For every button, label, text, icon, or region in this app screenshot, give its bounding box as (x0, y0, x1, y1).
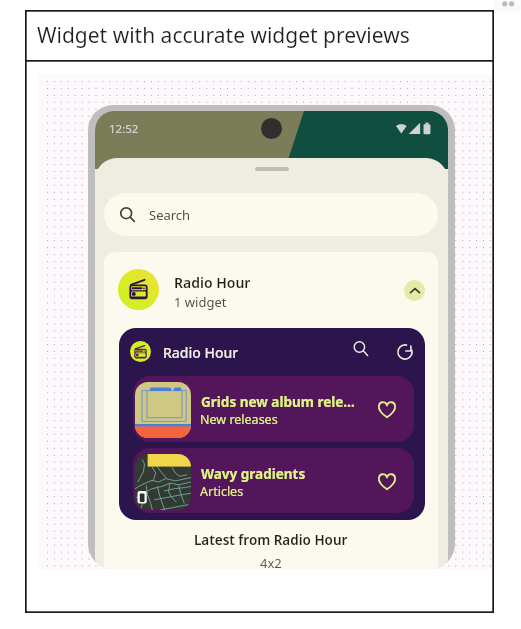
staticText: Grids new album releas… (201, 393, 357, 411)
staticText: Search (149, 206, 191, 224)
button[interactable]: Favorite (373, 467, 401, 495)
button[interactable]: Search (104, 193, 438, 236)
button[interactable]: Collapse (404, 280, 425, 301)
staticText: Radio Hour (174, 273, 251, 292)
staticText: 4x2 (260, 554, 282, 569)
staticText: New releases (200, 411, 278, 428)
staticText: Widget with accurate widget previews (37, 21, 410, 50)
button[interactable] (104, 252, 438, 328)
staticText: Articles (200, 483, 244, 500)
staticText: 12:52 (109, 121, 139, 137)
staticText: Radio Hour (163, 343, 239, 362)
button[interactable]: Favorite (373, 395, 401, 423)
staticText: Latest from Radio Hour (194, 531, 348, 549)
staticText: Wavy gradients (201, 465, 357, 483)
button[interactable]: Refresh (392, 339, 417, 364)
button[interactable]: Wavy gradients (133, 448, 414, 513)
button[interactable]: Search (349, 337, 374, 362)
button[interactable]: Grids new album releas… (133, 376, 414, 442)
staticText: 1 widget (174, 293, 227, 311)
